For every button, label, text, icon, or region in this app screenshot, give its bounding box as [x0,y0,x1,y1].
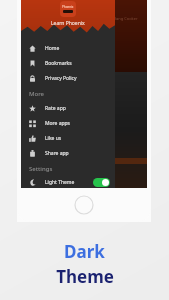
other: Light theme toggle [93,178,110,187]
button[interactable]: Home [21,41,115,56]
button[interactable]: Rate app [21,101,115,116]
staticText: Learn Phoenix [51,20,85,27]
staticText: More apps [45,120,70,127]
staticText: Bookmarks [45,60,72,67]
staticText: Share app [45,150,69,157]
staticText: Dark [64,240,105,263]
staticText: Hang Cooker [113,16,138,21]
button[interactable]: Share app [21,146,115,161]
button[interactable]: Like us [21,131,115,146]
button[interactable]: Bookmarks [21,56,115,71]
staticText: Rate app [45,105,66,112]
button[interactable]: Privacy Policy [21,71,115,86]
staticText: Settings [29,165,53,173]
button[interactable]: Light Theme [21,176,115,188]
staticText: More [29,90,45,98]
staticText: Privacy Policy [45,75,77,82]
staticText: Like us [45,135,62,142]
staticText: Home [45,45,60,52]
staticText: Theme [56,265,114,288]
button[interactable]: More apps [21,116,115,131]
staticText: Phoenix [62,5,74,9]
staticText: Light Theme [45,179,75,186]
